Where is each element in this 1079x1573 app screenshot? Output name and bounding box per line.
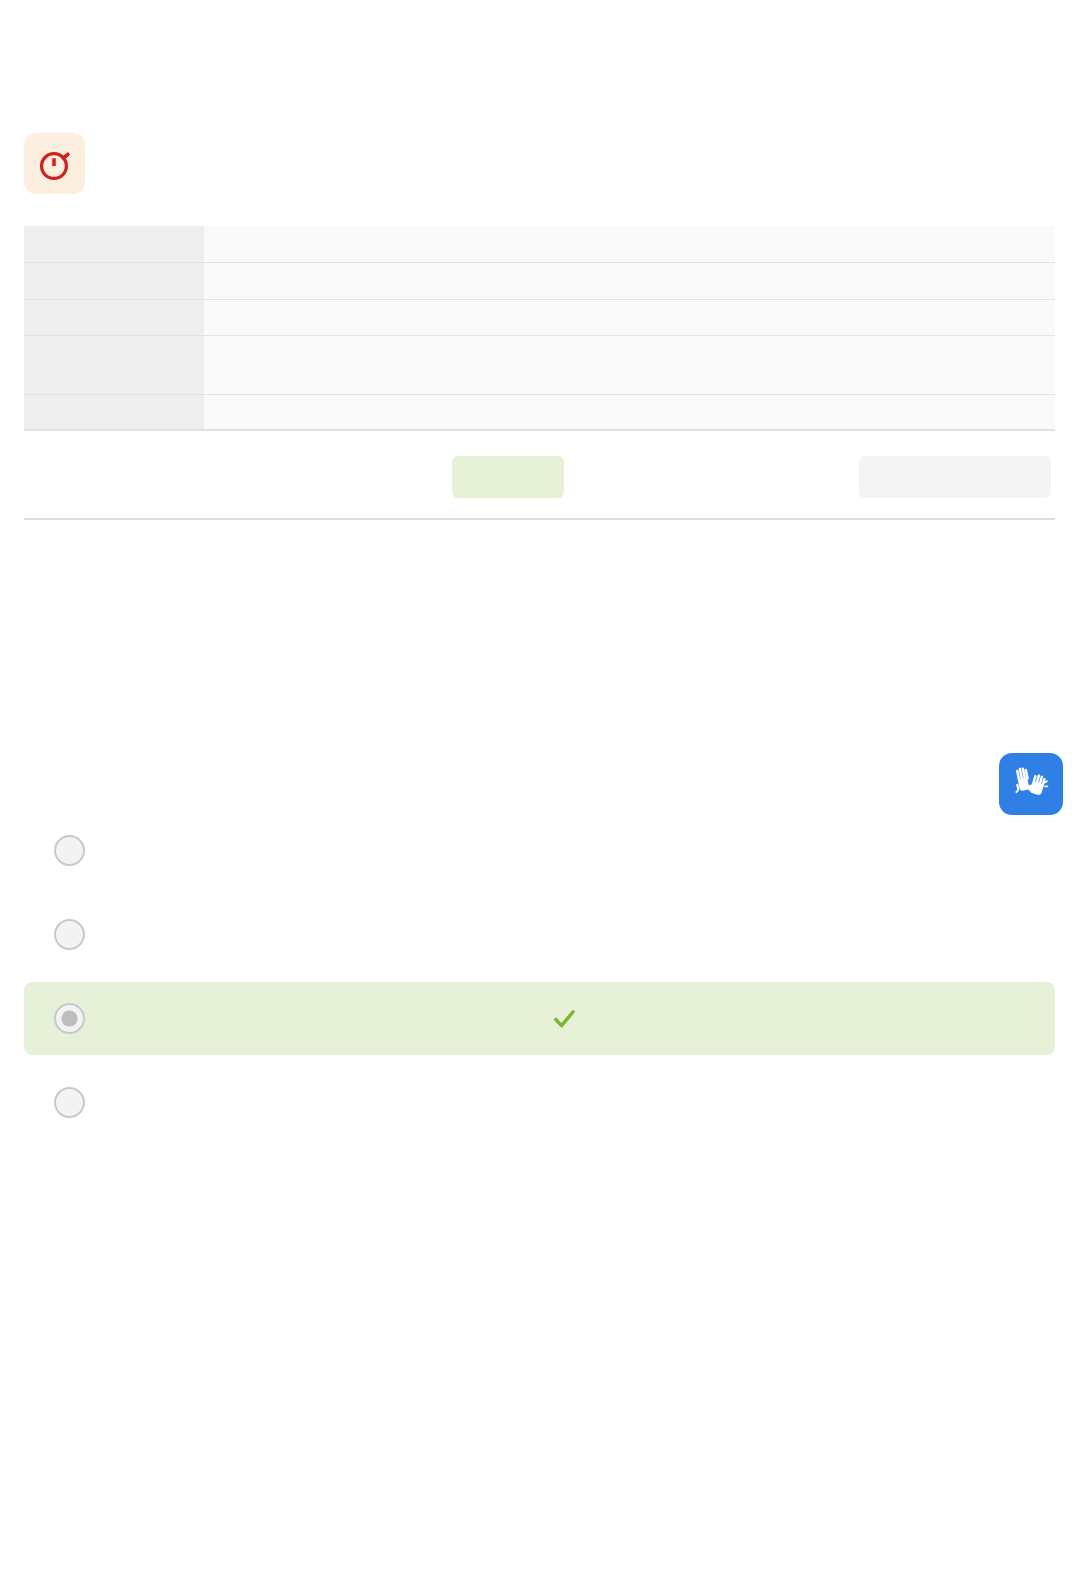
button[interactable] [24, 395, 1055, 429]
button[interactable] [24, 226, 1055, 262]
button[interactable]: Option [24, 814, 1055, 887]
button[interactable]: Timer [24, 133, 85, 194]
button[interactable] [24, 263, 1055, 299]
button[interactable]: Selected option [24, 982, 1055, 1055]
button[interactable] [24, 336, 1055, 394]
button[interactable] [24, 300, 1055, 335]
button[interactable]: Sign language [999, 753, 1063, 815]
